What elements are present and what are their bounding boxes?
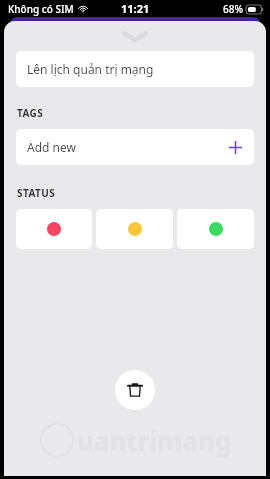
button[interactable]: Delete: [115, 370, 155, 410]
staticText: STATUS: [17, 186, 56, 200]
staticText: Lên lịch quản trị mạng: [27, 61, 154, 77]
staticText: Không có SIM: [8, 2, 74, 16]
staticText: TAGS: [17, 106, 44, 120]
button[interactable]: Collapse: [4, 21, 266, 51]
staticText: 68%: [223, 2, 243, 16]
button[interactable]: Status yellow: [96, 209, 173, 249]
button[interactable]: Lên lịch quản trị mạng: [16, 51, 254, 87]
button[interactable]: Status red: [16, 209, 92, 249]
button[interactable]: Add new: [16, 129, 254, 165]
button[interactable]: Status green: [177, 209, 254, 249]
staticText: 11:21: [121, 1, 150, 16]
staticText: Add new: [27, 139, 76, 155]
